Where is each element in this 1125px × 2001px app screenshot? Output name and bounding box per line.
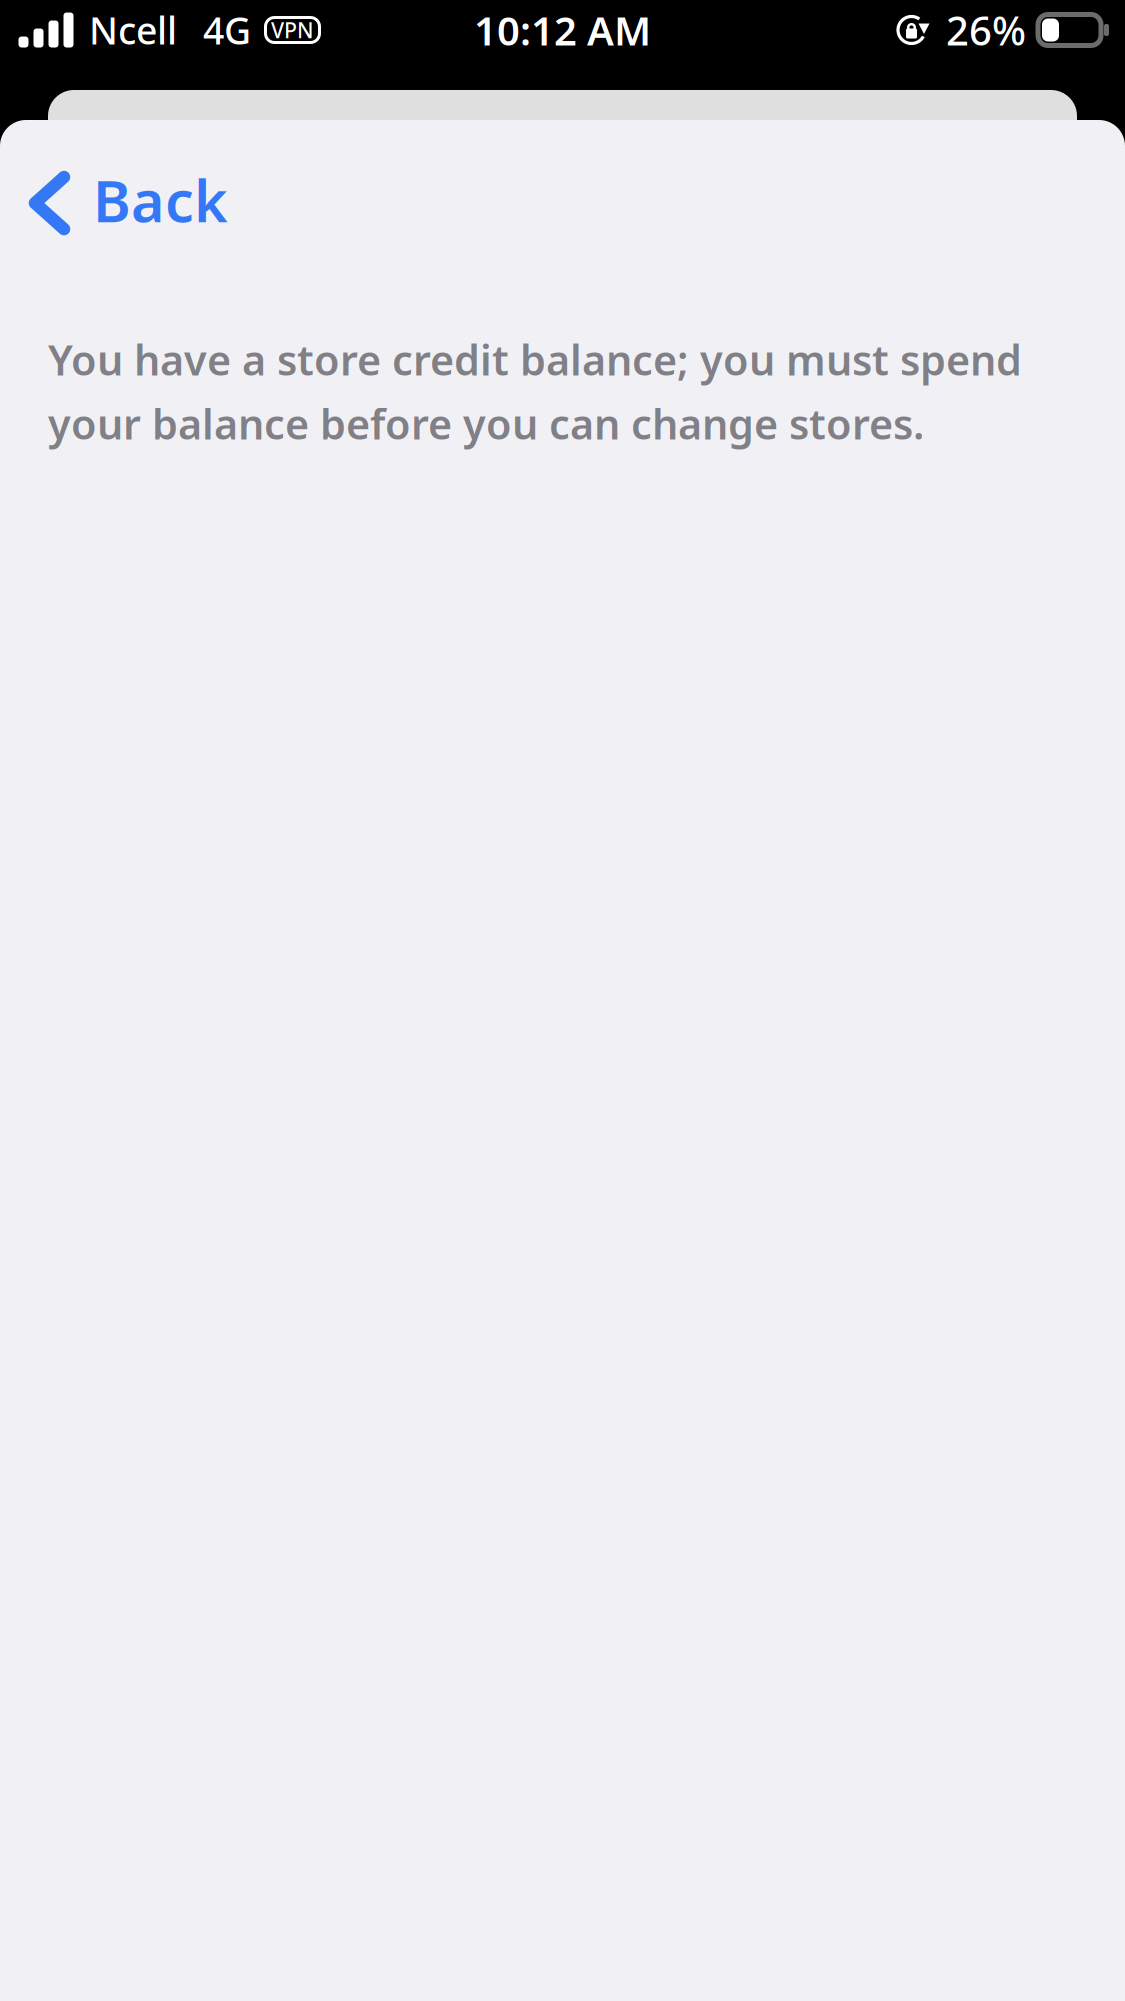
- staticText: 4G: [203, 5, 251, 55]
- staticText: VPN: [271, 16, 314, 44]
- staticText: You have a store credit balance; you mus…: [48, 332, 1022, 451]
- staticText: Ncell: [89, 5, 177, 55]
- staticText: Back: [93, 162, 228, 238]
- staticText: 26%: [946, 3, 1026, 56]
- staticText: 10:12 AM: [474, 3, 651, 56]
- button[interactable]: Back: [0, 151, 252, 251]
